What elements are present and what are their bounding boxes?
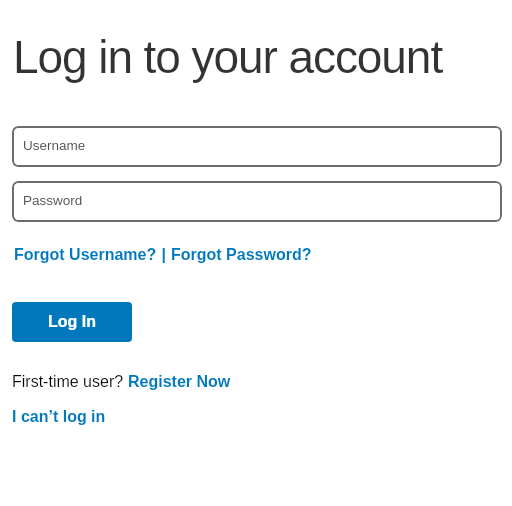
button[interactable]: I can’t log in bbox=[12, 408, 106, 426]
staticText: Username bbox=[23, 138, 86, 153]
staticText: | bbox=[157, 246, 171, 264]
button[interactable]: Password bbox=[12, 181, 502, 222]
button[interactable]: Forgot Password? bbox=[171, 246, 312, 264]
staticText: Log in to your account bbox=[13, 31, 443, 82]
button[interactable]: Register Now bbox=[128, 373, 231, 391]
staticText: Log In bbox=[48, 313, 96, 331]
button[interactable]: Forgot Username? bbox=[14, 246, 157, 264]
staticText: Password bbox=[23, 193, 83, 208]
button[interactable]: Username bbox=[12, 126, 502, 167]
staticText: First-time user? bbox=[12, 373, 128, 391]
button[interactable]: Log In bbox=[12, 302, 132, 342]
